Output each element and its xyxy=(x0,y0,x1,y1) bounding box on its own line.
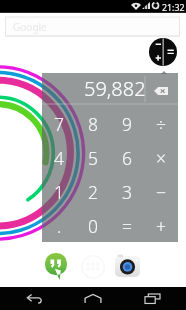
staticText: 5 xyxy=(88,146,98,170)
button[interactable]: 1 xyxy=(42,175,76,209)
button[interactable]: Google xyxy=(5,17,180,36)
button[interactable]: 5 xyxy=(76,141,110,175)
staticText: ÷ xyxy=(156,112,166,136)
staticText: . xyxy=(57,214,62,238)
button[interactable]: 4 xyxy=(42,141,76,175)
button[interactable]: . xyxy=(42,209,76,243)
staticText: Google xyxy=(13,20,47,34)
button[interactable]: 0 xyxy=(76,209,110,243)
staticText: − xyxy=(156,180,166,204)
button[interactable]: Back xyxy=(9,287,59,310)
staticText: 1 xyxy=(54,180,64,204)
button[interactable]: ÷ xyxy=(144,107,178,141)
button[interactable]: Hangouts xyxy=(45,253,67,280)
button[interactable]: Home xyxy=(68,287,118,310)
button[interactable]: Recents xyxy=(127,287,177,310)
staticText: 6 xyxy=(122,146,132,170)
button[interactable]: 7 xyxy=(42,107,76,141)
button[interactable]: = xyxy=(110,209,144,243)
staticText: = xyxy=(122,214,132,238)
staticText: 9 xyxy=(122,112,132,136)
button[interactable]: 9 xyxy=(110,107,144,141)
button[interactable]: 6 xyxy=(110,141,144,175)
staticText: 0 xyxy=(88,214,98,238)
staticText: 8 xyxy=(88,112,98,136)
button[interactable]: × xyxy=(144,141,178,175)
button[interactable]: Backspace xyxy=(154,87,168,95)
staticText: 4 xyxy=(54,146,64,170)
button[interactable]: Calculator xyxy=(149,38,177,66)
staticText: + xyxy=(156,214,166,238)
button[interactable]: + xyxy=(144,209,178,243)
button[interactable]: 2 xyxy=(76,175,110,209)
staticText: 7 xyxy=(54,112,64,136)
button[interactable]: Camera xyxy=(115,256,140,277)
button[interactable]: 8 xyxy=(76,107,110,141)
staticText: 21:32 xyxy=(162,2,185,14)
button[interactable]: − xyxy=(144,175,178,209)
staticText: 3 xyxy=(122,180,132,204)
button[interactable]: 3 xyxy=(110,175,144,209)
staticText: 59,882 xyxy=(84,75,146,102)
staticText: × xyxy=(156,146,166,170)
staticText: 2 xyxy=(88,180,98,204)
